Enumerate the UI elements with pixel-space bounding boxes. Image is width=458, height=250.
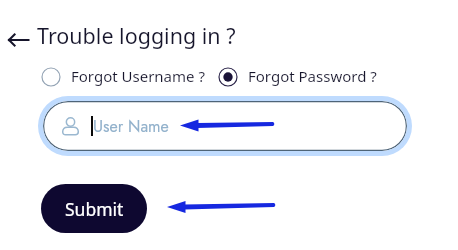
button[interactable]: Back — [4, 29, 34, 51]
button[interactable]: User Name — [38, 96, 412, 156]
staticText: Forgot Username ? — [71, 66, 205, 86]
staticText: Trouble logging in ? — [37, 21, 236, 50]
button[interactable]: Forgot Password ? — [218, 67, 377, 87]
button[interactable]: Forgot Username ? — [41, 67, 205, 87]
staticText: User Name — [93, 115, 169, 138]
button[interactable]: Submit — [41, 184, 147, 233]
staticText: Submit — [65, 197, 124, 221]
staticText: Forgot Password ? — [248, 66, 377, 86]
